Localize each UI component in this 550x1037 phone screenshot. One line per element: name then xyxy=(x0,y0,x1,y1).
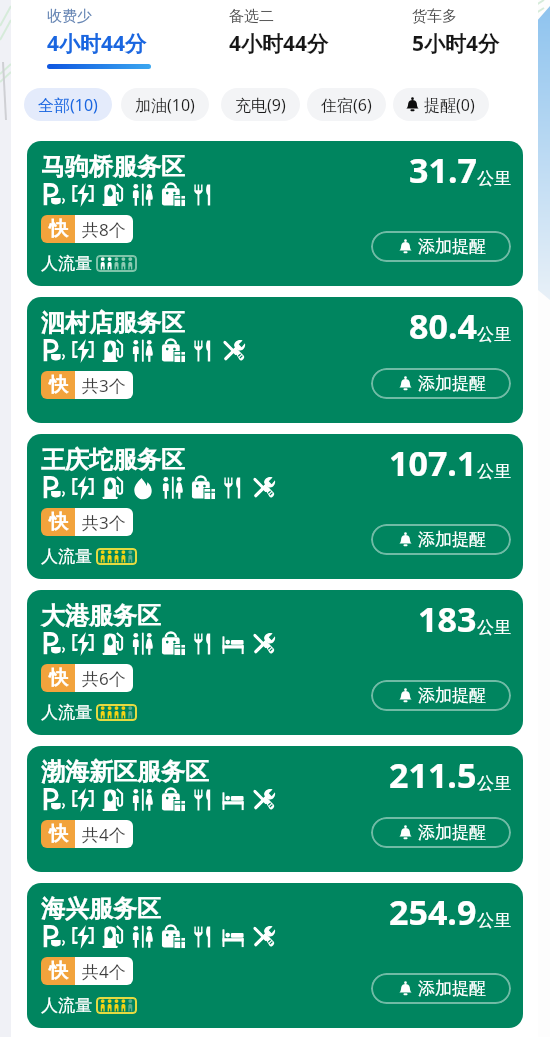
staticText: 4小时44分 xyxy=(47,29,147,58)
staticText: 海兴服务区 xyxy=(41,894,161,924)
staticText: 备选二 xyxy=(229,7,274,26)
staticText: 添加提醒 xyxy=(418,978,486,999)
button[interactable]: 添加提醒 xyxy=(371,231,511,262)
button[interactable]: 充电(9) xyxy=(221,88,300,121)
staticText: 共3个 xyxy=(82,511,126,534)
staticText: 人流量 xyxy=(41,702,92,723)
button[interactable]: 住宿(6) xyxy=(307,88,386,121)
staticText: 人流量 xyxy=(41,253,92,274)
button[interactable]: 添加提醒 xyxy=(371,368,511,399)
button[interactable]: 添加提醒 xyxy=(371,973,511,1004)
button[interactable]: 泗村店服务区 xyxy=(27,297,523,423)
staticText: 快 xyxy=(49,822,68,846)
staticText: 共4个 xyxy=(82,823,126,846)
staticText: 31.7 xyxy=(409,147,477,193)
staticText: 人流量 xyxy=(41,995,92,1016)
staticText: 添加提醒 xyxy=(418,373,486,394)
staticText: 添加提醒 xyxy=(418,822,486,843)
staticText: 公里 xyxy=(477,461,511,482)
button[interactable]: 马驹桥服务区 xyxy=(27,141,523,286)
button[interactable]: 添加提醒 xyxy=(371,817,511,848)
staticText: 211.5 xyxy=(389,752,477,798)
button[interactable]: 王庆坨服务区 xyxy=(27,434,523,579)
staticText: 货车多 xyxy=(412,7,457,26)
staticText: 公里 xyxy=(477,773,511,794)
staticText: 公里 xyxy=(477,168,511,189)
button[interactable]: 货车多 xyxy=(412,0,500,58)
staticText: 渤海新区服务区 xyxy=(41,757,209,787)
button[interactable]: 添加提醒 xyxy=(371,524,511,555)
button[interactable]: 收费少 xyxy=(47,0,151,69)
staticText: 快 xyxy=(49,510,68,534)
staticText: 共3个 xyxy=(82,374,126,397)
staticText: 收费少 xyxy=(47,7,92,26)
staticText: 提醒(0) xyxy=(424,94,475,116)
staticText: 快 xyxy=(49,666,68,690)
staticText: 公里 xyxy=(477,324,511,345)
staticText: 人流量 xyxy=(41,546,92,567)
staticText: 80.4 xyxy=(409,303,477,349)
staticText: 加油(10) xyxy=(135,94,195,116)
staticText: 快 xyxy=(49,217,68,241)
button[interactable]: 备选二 xyxy=(229,0,333,58)
staticText: 107.1 xyxy=(389,440,477,486)
staticText: 马驹桥服务区 xyxy=(41,152,185,182)
staticText: 快 xyxy=(49,959,68,983)
staticText: 4小时44分 xyxy=(229,29,329,58)
staticText: 5小时4分 xyxy=(412,29,500,58)
staticText: 共6个 xyxy=(82,667,126,690)
button[interactable]: 海兴服务区 xyxy=(27,883,523,1028)
button[interactable]: 添加提醒 xyxy=(371,680,511,711)
staticText: 住宿(6) xyxy=(321,94,372,116)
staticText: 共8个 xyxy=(82,218,126,241)
staticText: 公里 xyxy=(477,910,511,931)
button[interactable]: 大港服务区 xyxy=(27,590,523,735)
staticText: 254.9 xyxy=(389,889,477,935)
staticText: 公里 xyxy=(477,617,511,638)
staticText: 大港服务区 xyxy=(41,601,161,631)
staticText: 王庆坨服务区 xyxy=(41,445,185,475)
staticText: 共4个 xyxy=(82,960,126,983)
staticText: 添加提醒 xyxy=(418,529,486,550)
staticText: 泗村店服务区 xyxy=(41,308,185,338)
staticText: 添加提醒 xyxy=(418,236,486,257)
staticText: 充电(9) xyxy=(235,94,286,116)
button[interactable]: 提醒(0) xyxy=(393,88,489,121)
staticText: 全部(10) xyxy=(38,94,98,116)
button[interactable]: 渤海新区服务区 xyxy=(27,746,523,872)
staticText: 183 xyxy=(418,596,477,642)
button[interactable]: 加油(10) xyxy=(121,88,209,121)
button[interactable]: 全部(10) xyxy=(24,88,112,121)
staticText: 快 xyxy=(49,373,68,397)
staticText: 添加提醒 xyxy=(418,685,486,706)
